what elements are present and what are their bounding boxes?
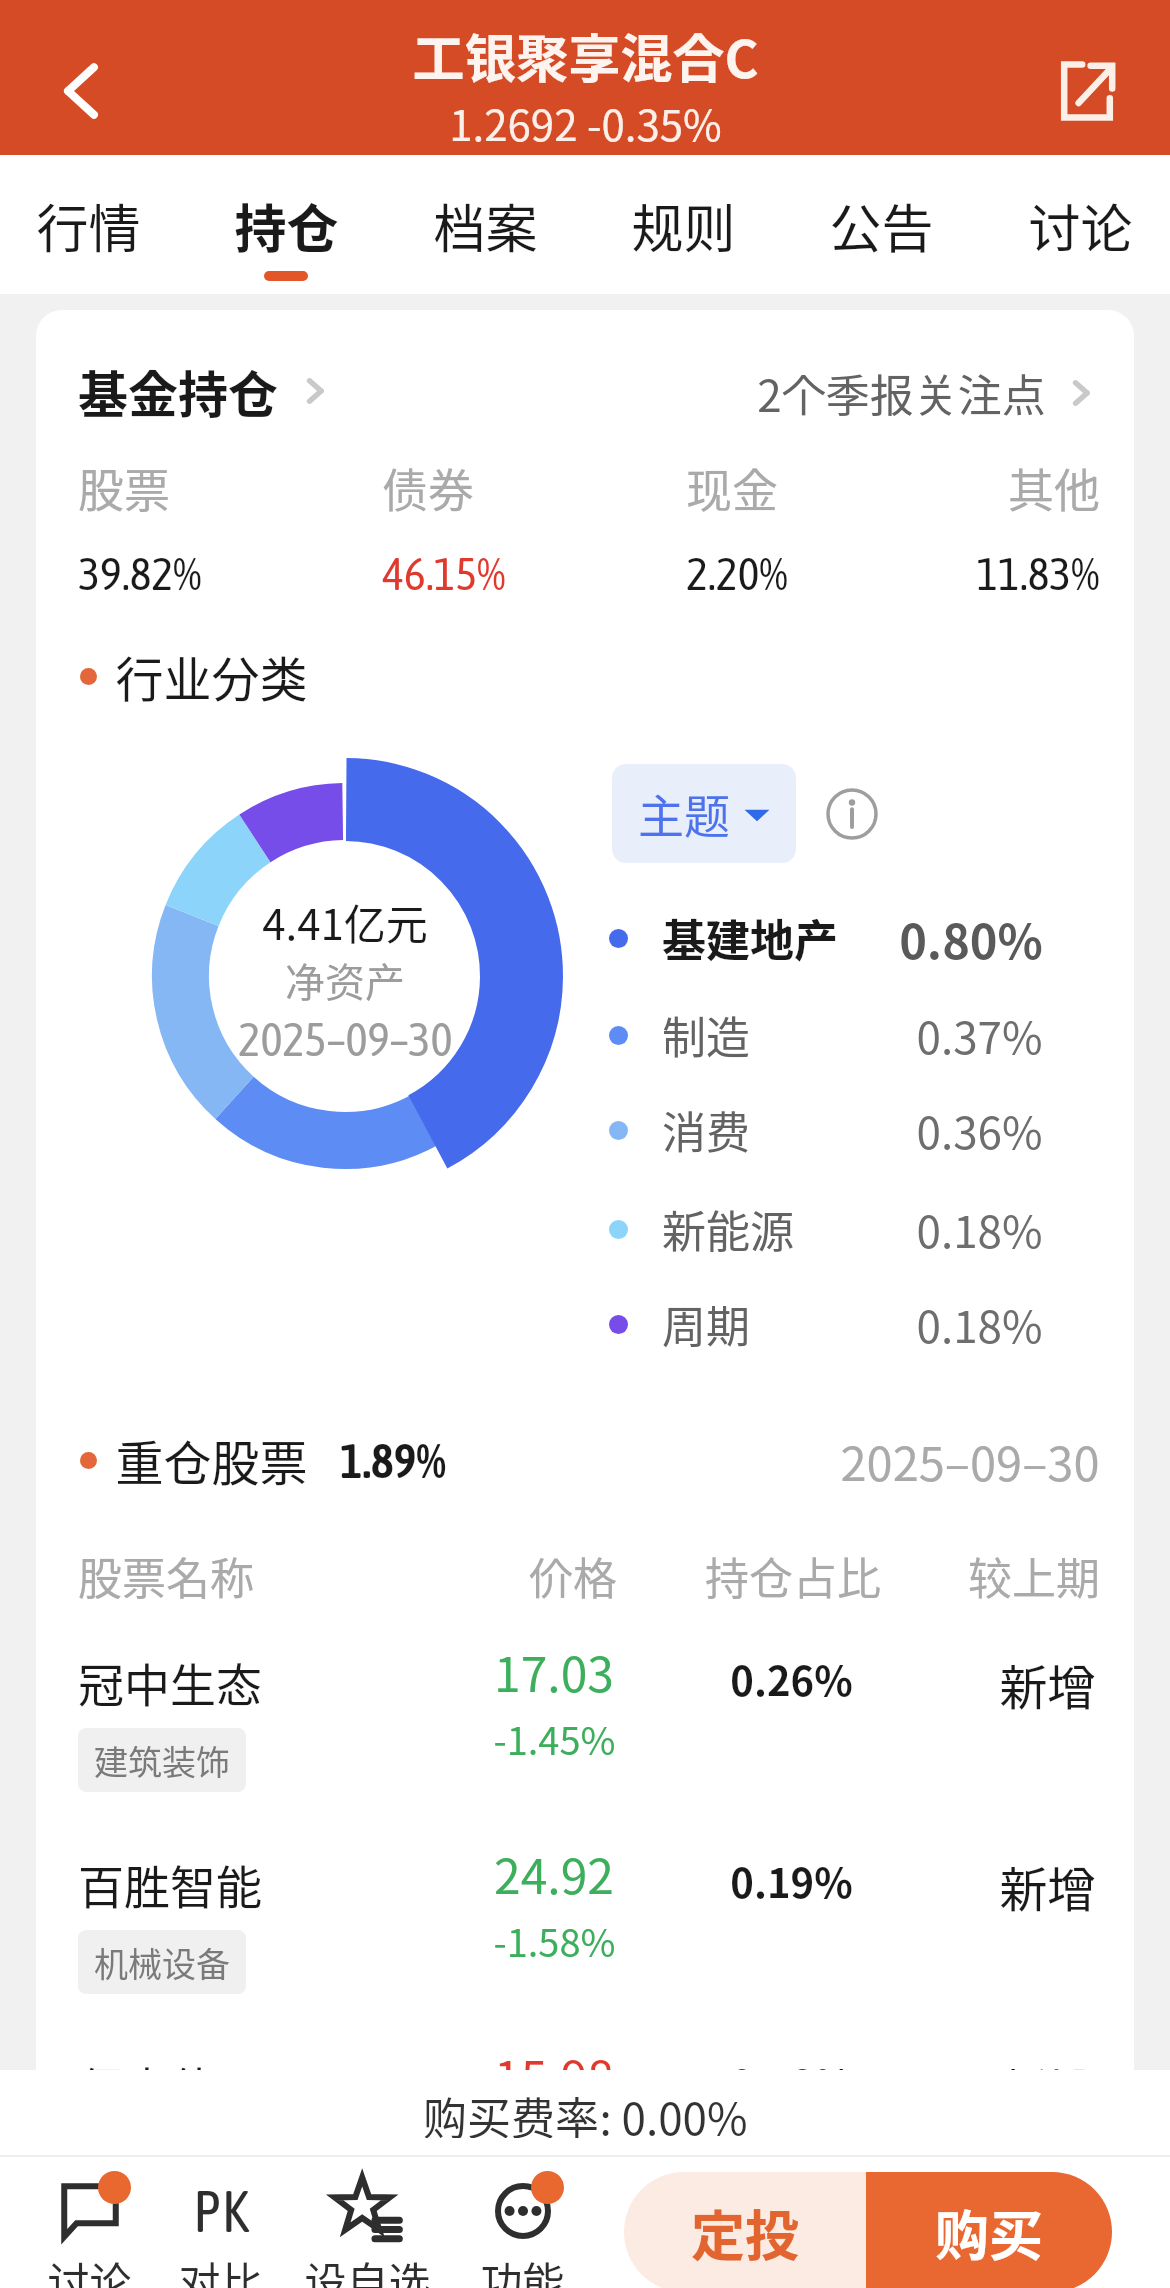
staticText: 2025–09–30 <box>840 1426 1100 1494</box>
staticText: 46.15% <box>382 547 506 600</box>
staticText: : 0.00% <box>599 2084 748 2138</box>
staticText: 基础化工 <box>94 2140 230 2189</box>
staticText: 对比 <box>178 2249 263 2288</box>
staticText: 讨论 <box>1028 188 1133 263</box>
button[interactable]: 档案 <box>401 155 569 294</box>
staticText: 0.18% <box>916 1197 1043 1261</box>
staticText: 24.92 <box>494 1838 614 1902</box>
button[interactable]: 冠中生态 <box>36 1621 1134 1811</box>
staticText: 行情 <box>36 188 141 263</box>
staticText: 2025–09–30 <box>238 1012 453 1066</box>
staticText: 2.20% <box>686 547 788 600</box>
staticText: 主题 <box>638 780 730 847</box>
staticText: 债券 <box>382 454 474 521</box>
staticText: 购买 <box>935 2193 1043 2271</box>
staticText: 17.03 <box>494 1636 614 1700</box>
button[interactable]: 基金持仓 <box>78 355 332 427</box>
staticText: 0.18% <box>730 2054 853 2112</box>
button[interactable]: Share <box>1039 43 1135 139</box>
button[interactable]: Info <box>822 784 882 844</box>
staticText: 1.2692 -0.35% <box>449 92 722 153</box>
button[interactable]: 公告 <box>797 155 965 294</box>
staticText: 定投 <box>691 2193 799 2271</box>
staticText: 机械设备 <box>94 1938 230 1987</box>
staticText: 重仓股票 <box>115 1425 308 1495</box>
staticText: 1.89% <box>340 1433 446 1488</box>
staticText: 新增 <box>999 1649 1096 1713</box>
staticText: 新增 <box>999 1851 1096 1915</box>
button[interactable]: 功能 <box>450 2165 594 2288</box>
button[interactable]: 制造 <box>591 991 1080 1079</box>
staticText: -1.45% <box>493 1711 616 1766</box>
button[interactable]: 基建地产 <box>591 894 1080 982</box>
staticText: PK <box>193 2178 250 2244</box>
staticText: 保立佳 <box>78 2053 216 2117</box>
staticText: 百胜智能 <box>78 1851 262 1915</box>
staticText: 讨论 <box>47 2249 132 2288</box>
staticText: 持仓占比 <box>705 1544 881 1608</box>
staticText: 基建地产 <box>662 906 838 970</box>
staticText: 基金持仓 <box>78 355 278 427</box>
staticText: 持仓 <box>234 188 339 263</box>
staticText: -1.30% <box>493 2115 616 2170</box>
staticText: 公告 <box>829 188 934 263</box>
button[interactable]: 新能源 <box>591 1185 1080 1273</box>
button[interactable]: PK <box>148 2165 292 2288</box>
button[interactable]: 2个季报关注点 <box>757 361 1098 425</box>
staticText: 冠中生态 <box>78 1649 262 1713</box>
staticText: 工银聚享混合C <box>412 18 759 93</box>
staticText: 0.18% <box>916 1292 1043 1356</box>
staticText: 较上期 <box>968 1544 1100 1608</box>
staticText: 建筑装饰 <box>94 1736 230 1785</box>
button[interactable]: 规则 <box>599 155 767 294</box>
staticText: 新增 <box>999 2053 1096 2117</box>
staticText: 净资产 <box>285 951 405 1009</box>
button[interactable]: 周期 <box>591 1280 1080 1368</box>
staticText: 11.83% <box>976 547 1100 600</box>
staticText: 新能源 <box>662 1197 794 1261</box>
staticText: 消费 <box>662 1098 750 1162</box>
button[interactable]: Back <box>33 43 129 139</box>
staticText: 股票 <box>78 454 170 521</box>
staticText: 周期 <box>662 1292 750 1356</box>
button[interactable]: 百胜智能 <box>36 1823 1134 2013</box>
staticText: 股票名称 <box>78 1544 254 1608</box>
staticText: 规则 <box>631 188 736 263</box>
button[interactable]: 保立佳 <box>36 2025 1134 2215</box>
staticText: 现金 <box>686 454 778 521</box>
staticText: 0.36% <box>916 1098 1043 1162</box>
staticText: 设自选 <box>304 2249 431 2288</box>
staticText: 0.80% <box>899 904 1043 972</box>
button[interactable]: 主题 <box>612 764 796 863</box>
staticText: 15.98 <box>494 2040 614 2104</box>
button[interactable]: 消费 <box>591 1086 1080 1174</box>
staticText: 4.41亿元 <box>262 891 428 952</box>
staticText: -1.58% <box>493 1913 616 1968</box>
button[interactable]: 行情 <box>4 155 172 294</box>
staticText: 价格 <box>529 1544 617 1608</box>
staticText: 制造 <box>662 1003 750 1067</box>
button[interactable]: 定投 <box>624 2172 866 2288</box>
staticText: 购买费率 <box>423 2084 599 2138</box>
staticText: 0.19% <box>730 1852 853 1910</box>
button[interactable]: 讨论 <box>17 2165 161 2288</box>
staticText: 档案 <box>433 188 538 263</box>
staticText: 2个季报关注点 <box>757 361 1046 425</box>
staticText: 0.26% <box>730 1650 853 1708</box>
button[interactable]: 持仓 <box>202 155 370 294</box>
button[interactable]: 设自选 <box>295 2165 439 2288</box>
button[interactable]: 讨论 <box>996 155 1164 294</box>
staticText: 其他 <box>1008 454 1100 521</box>
staticText: 行业分类 <box>115 641 308 711</box>
staticText: 0.37% <box>916 1003 1043 1067</box>
button[interactable]: 购买 <box>866 2172 1112 2288</box>
staticText: 39.82% <box>78 547 202 600</box>
staticText: 功能 <box>480 2249 565 2288</box>
